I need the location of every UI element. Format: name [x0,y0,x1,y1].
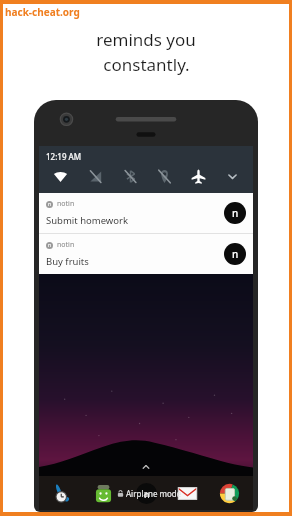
button[interactable]: n [39,234,253,274]
staticText: n [48,201,52,208]
button[interactable]: notin [136,483,157,504]
button[interactable]: Phone [42,476,83,510]
button[interactable]: notin [124,476,166,510]
button[interactable]: Open app drawer [139,460,153,474]
staticText: constantly. [103,53,190,76]
button[interactable]: Play Store [83,476,124,510]
button[interactable]: Wi-Fi [43,166,78,186]
staticText: Submit homework [46,214,129,227]
button[interactable]: Location off [147,166,181,186]
staticText: n [232,247,239,261]
staticText: notin [57,199,75,209]
staticText: Airplane mode [126,488,182,499]
staticText: reminds you [96,28,196,51]
button[interactable]: n [39,193,253,233]
staticText: n [144,488,150,500]
button[interactable]: Chrome [208,476,250,510]
staticText: n [232,206,239,220]
staticText: hack-cheat.org [5,5,80,19]
staticText: notin [57,240,75,250]
button[interactable]: Airplane mode [181,166,215,186]
staticText: Buy fruits [46,255,89,268]
staticText: n [48,242,52,249]
button[interactable]: Mobile data off [78,166,113,186]
staticText: 12:19 AM [46,151,82,162]
button[interactable]: Gmail [166,476,208,510]
button[interactable]: Expand [215,166,249,186]
button[interactable]: Bluetooth off [113,166,147,186]
